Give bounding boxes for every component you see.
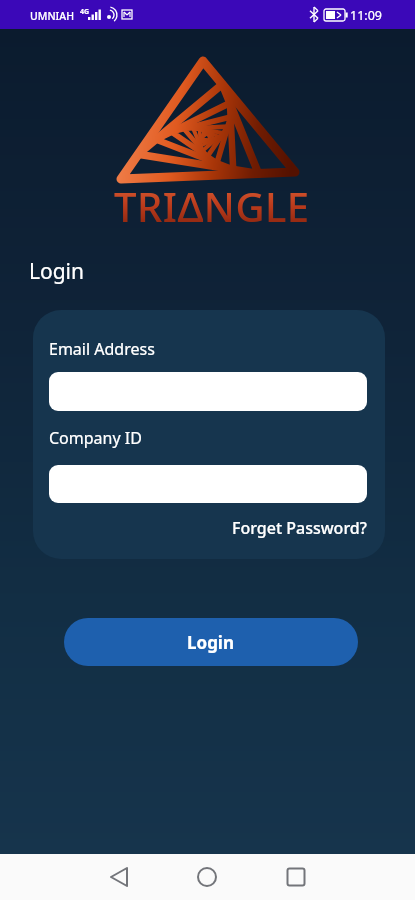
staticText: Login <box>187 631 235 654</box>
button[interactable] <box>49 465 367 503</box>
button[interactable]: Forget Password? <box>232 517 367 539</box>
staticText: 11:09 <box>350 7 382 24</box>
button[interactable] <box>49 372 367 411</box>
button[interactable] <box>95 854 143 900</box>
staticText: Email Address <box>49 338 155 360</box>
staticText: TRIΔNGLE <box>114 179 310 233</box>
staticText: UMNIAH <box>30 9 74 23</box>
staticText: Login <box>29 257 85 286</box>
button[interactable] <box>272 854 320 900</box>
button[interactable]: Login <box>64 618 358 666</box>
staticText: Company ID <box>49 427 142 449</box>
button[interactable] <box>183 854 231 900</box>
staticText: 4G <box>80 7 90 17</box>
